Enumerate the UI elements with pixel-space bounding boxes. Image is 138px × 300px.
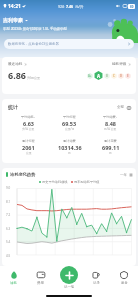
button[interactable]: 最近油耗 bbox=[8, 62, 27, 67]
staticText: 全部 bbox=[117, 105, 125, 110]
staticText: 升/百公里 bbox=[27, 76, 41, 80]
staticText: 69.53 bbox=[62, 120, 77, 127]
button[interactable]: 累计行程 bbox=[8, 139, 49, 155]
staticText: 7.46 bbox=[66, 4, 74, 9]
button[interactable]: 费用 bbox=[27, 266, 54, 286]
staticText: 最近油耗 bbox=[8, 62, 23, 67]
staticText: 5.4 bbox=[6, 240, 11, 244]
staticText: E bbox=[127, 74, 129, 78]
button[interactable]: 平均行程 bbox=[49, 115, 90, 131]
staticText: 14:21 bbox=[8, 3, 21, 10]
staticText: 4.5 bbox=[6, 254, 11, 258]
staticText: 数据有变化，点此备份到云服务器 bbox=[8, 42, 59, 46]
staticText: 6.3 bbox=[6, 227, 11, 231]
staticText: A bbox=[97, 73, 101, 79]
staticText: 统计 bbox=[8, 104, 18, 110]
staticText: 元 bbox=[109, 151, 112, 155]
staticText: 历史平均油耗曲线 bbox=[42, 180, 68, 184]
staticText: 累计油费 bbox=[63, 139, 76, 143]
button[interactable]: 平均油费 bbox=[90, 115, 131, 131]
staticText: 平均油耗 bbox=[21, 115, 34, 119]
staticText: ? bbox=[116, 115, 118, 118]
staticText: 9.0 bbox=[6, 186, 11, 190]
button[interactable]: 油耗 bbox=[0, 266, 27, 286]
staticText: 80 bbox=[130, 5, 134, 9]
staticText: 同车型油耗平均值 bbox=[74, 180, 100, 184]
staticText: 记录 bbox=[93, 281, 100, 285]
staticText: 699.11 bbox=[102, 144, 120, 151]
staticText: 累计花费 bbox=[104, 139, 117, 143]
button[interactable]: 平均油耗 bbox=[8, 115, 49, 131]
staticText: 吉利帝豪 bbox=[3, 17, 23, 23]
staticText: 92# bbox=[58, 4, 66, 9]
staticText: 公里/月 bbox=[65, 127, 75, 131]
staticText: 能耗评级 bbox=[112, 62, 127, 67]
button[interactable]: 服务 bbox=[110, 266, 138, 286]
staticText: 一年 bbox=[120, 173, 127, 177]
staticText: 10314.36 bbox=[58, 144, 82, 151]
staticText: 元 bbox=[68, 151, 71, 155]
staticText: 记一笔 bbox=[64, 285, 75, 289]
staticText: 元/升 bbox=[74, 4, 84, 9]
staticText: D bbox=[120, 74, 122, 78]
staticText: A+ bbox=[88, 74, 92, 78]
button[interactable]: 全部 bbox=[117, 105, 131, 110]
staticText: 公里 bbox=[26, 151, 32, 155]
staticText: C bbox=[113, 74, 115, 78]
staticText: 7.2 bbox=[6, 213, 11, 217]
staticText: 升/百公里 bbox=[22, 127, 35, 131]
staticText: ? bbox=[34, 115, 36, 118]
button[interactable]: 能耗评级 bbox=[112, 62, 131, 67]
staticText: 油耗变化趋势 bbox=[10, 172, 36, 177]
staticText: B bbox=[106, 74, 108, 78]
button[interactable]: 累计花费 bbox=[90, 139, 131, 155]
staticText: 费用 bbox=[37, 281, 44, 285]
staticText: 平均行程 bbox=[63, 115, 76, 119]
staticText: 元/百公里 bbox=[104, 127, 117, 131]
staticText: 8.1 bbox=[6, 200, 11, 204]
button[interactable]: 一年 bbox=[120, 173, 133, 177]
staticText: 平均油费 bbox=[103, 115, 116, 119]
staticText: 服务 bbox=[121, 281, 128, 285]
staticText: 6.86 bbox=[8, 69, 26, 81]
staticText: 累计行程 bbox=[22, 139, 35, 143]
staticText: 6.63 bbox=[23, 120, 34, 127]
staticText: 2061 bbox=[22, 144, 35, 151]
staticText: 油耗 bbox=[10, 281, 17, 285]
button[interactable]: 记一笔 bbox=[60, 266, 78, 284]
button[interactable]: 累计油费 bbox=[49, 139, 90, 155]
button[interactable]: 数据有变化，点此备份到云服务器 bbox=[4, 39, 134, 49]
staticText: 8.48 bbox=[105, 120, 116, 127]
button[interactable]: 记录 bbox=[82, 266, 110, 286]
staticText: 车型 2023款 第4代冠军版 1.5L 手动豪华型 bbox=[3, 26, 67, 31]
